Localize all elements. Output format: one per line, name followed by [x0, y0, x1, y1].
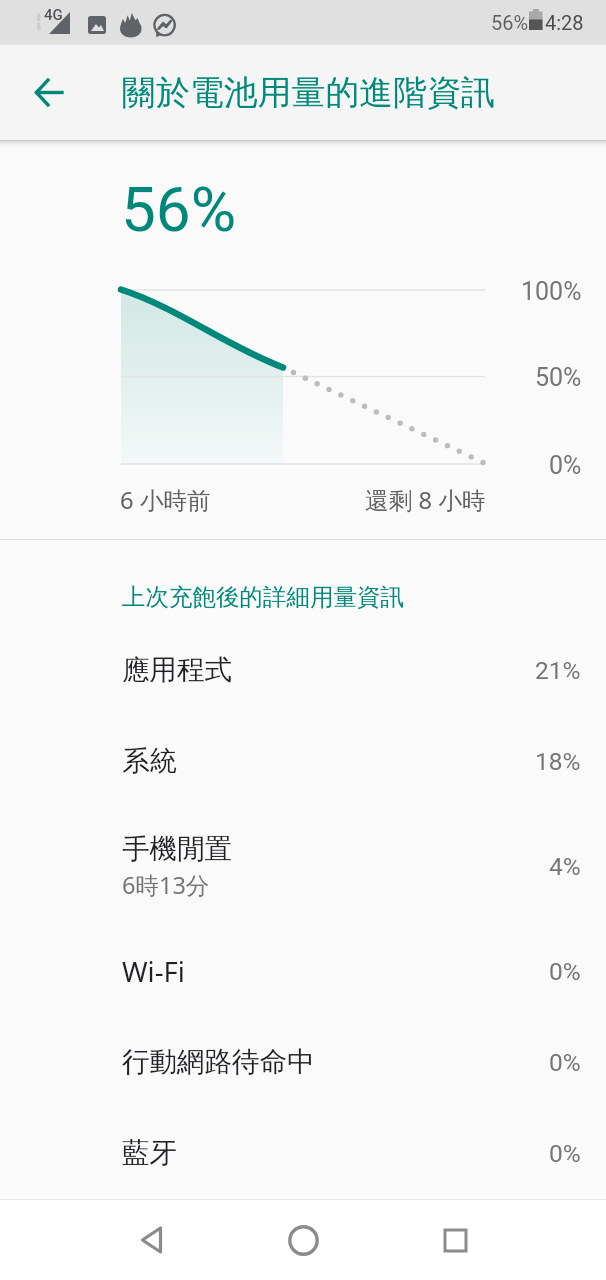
button[interactable]: 手機閒置 — [0, 807, 606, 926]
button[interactable]: 藍牙 — [0, 1108, 606, 1199]
staticText: 上次充飽後的詳細用量資訊 — [122, 582, 404, 612]
staticText: 還剩 8 小時 — [365, 484, 486, 516]
staticText: 4G — [44, 6, 63, 24]
staticText: 0% — [549, 957, 581, 986]
staticText: 應用程式 — [122, 653, 232, 688]
button[interactable]: Wi-Fi — [0, 926, 606, 1017]
staticText: 56% — [491, 11, 529, 34]
button[interactable]: Back — [0, 45, 96, 140]
button[interactable]: Back — [111, 1200, 191, 1280]
staticText: 6 小時前 — [120, 484, 211, 516]
staticText: 關於電池用量的進階資訊 — [122, 71, 495, 114]
staticText: 行動網路待命中 — [122, 1045, 315, 1080]
staticText: 4:28 — [545, 11, 584, 34]
button[interactable]: 行動網路待命中 — [0, 1017, 606, 1108]
staticText: 6時13分 — [122, 869, 210, 901]
staticText: 0% — [549, 1139, 581, 1168]
staticText: 4% — [549, 852, 581, 881]
staticText: 100% — [521, 277, 582, 306]
staticText: 手機閒置 — [122, 832, 232, 867]
staticText: 0% — [549, 451, 582, 480]
staticText: 50% — [535, 363, 582, 392]
button[interactable]: Recent apps — [415, 1200, 495, 1280]
button[interactable]: 系統 — [0, 716, 606, 807]
staticText: 系統 — [122, 744, 177, 779]
staticText: 0% — [549, 1048, 581, 1077]
button[interactable]: Home — [263, 1200, 343, 1280]
staticText: Wi-Fi — [122, 953, 185, 990]
staticText: 18% — [535, 747, 581, 776]
staticText: 56% — [121, 173, 237, 246]
staticText: 21% — [535, 656, 581, 685]
button[interactable]: 應用程式 — [0, 625, 606, 716]
staticText: 藍牙 — [122, 1136, 177, 1171]
